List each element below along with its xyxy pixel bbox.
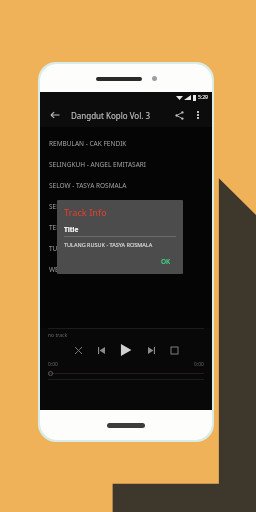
staticText: TULANG RUSUK - TASYA ROSMALA [64, 241, 153, 248]
button[interactable]: SELOW - TASYA ROSMALA [40, 175, 212, 196]
staticText: Title [64, 225, 79, 234]
staticText: Track Info [64, 206, 107, 218]
staticText: TERHANYUT DALAM KEMESRAAN [49, 223, 150, 232]
button[interactable]: WEGAH KELANGAN - VIA VALLEN [40, 259, 212, 280]
staticText: WEGAH KELANGAN - VIA VALLEN [49, 265, 149, 274]
button[interactable]: SELINGKUH - ANGEL EMITASARI [40, 154, 212, 175]
staticText: 0:00 [194, 361, 204, 368]
staticText: REMBULAN - CAK FENDIK [49, 139, 127, 148]
staticText: SELOW - TASYA ROSMALA [49, 181, 127, 190]
button[interactable]: TERHANYUT DALAM KEMESRAAN [40, 217, 212, 238]
button[interactable]: REMBULAN - CAK FENDIK [40, 133, 212, 154]
button[interactable]: SENANDUNG RINDU - ARNETHA JULIA [40, 196, 212, 217]
button[interactable]: More options [191, 108, 205, 122]
button[interactable]: OK [156, 255, 176, 268]
button[interactable]: Repeat [167, 343, 181, 357]
staticText: TULANG RUSUK - TASYA ROSMALA [49, 244, 154, 253]
button[interactable]: Previous [94, 343, 108, 357]
staticText: Dangdut Koplo Vol. 3 [71, 110, 171, 121]
staticText: SENANDUNG RINDU - ARNETHA JULIA [49, 202, 165, 211]
staticText: no track [48, 332, 68, 339]
button[interactable]: TULANG RUSUK - TASYA ROSMALA [40, 238, 212, 259]
button[interactable] [48, 370, 204, 376]
button[interactable]: Play [117, 341, 135, 359]
staticText: OK [161, 257, 171, 266]
staticText: 5:29 [198, 94, 208, 101]
button[interactable]: Next [144, 343, 158, 357]
button[interactable]: Back [47, 107, 63, 123]
staticText: 0:00 [48, 361, 58, 368]
button[interactable]: Shuffle [71, 343, 85, 357]
staticText: SELINGKUH - ANGEL EMITASARI [49, 160, 147, 169]
button[interactable]: Share [171, 107, 187, 123]
